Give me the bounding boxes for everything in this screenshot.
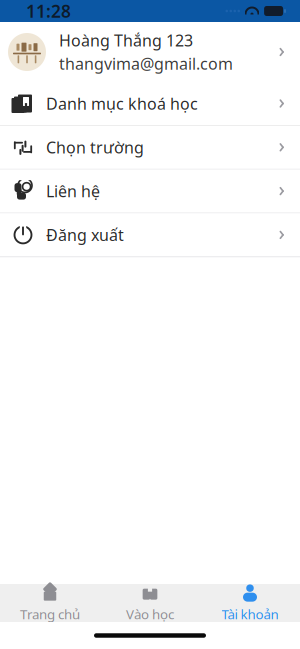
button[interactable]: Chọn trường bbox=[0, 126, 300, 169]
staticText: 11:28 bbox=[26, 0, 71, 22]
button[interactable]: Danh mục khoá học bbox=[0, 82, 300, 125]
button[interactable]: Đăng xuất bbox=[0, 213, 300, 256]
button[interactable]: Trang chủ bbox=[0, 584, 100, 622]
button[interactable]: Vào học bbox=[100, 584, 200, 622]
staticText: Vào học bbox=[126, 605, 174, 623]
staticText: Tài khoản bbox=[221, 605, 278, 623]
button[interactable]: Hoàng Thắng 123 bbox=[0, 22, 300, 82]
staticText: Trang chủ bbox=[20, 605, 80, 623]
staticText: Hoàng Thắng 123 bbox=[59, 30, 193, 51]
button[interactable]: Liên hệ bbox=[0, 170, 300, 213]
staticText: Danh mục khoá học bbox=[46, 93, 198, 114]
staticText: thangvima@gmail.com bbox=[59, 53, 233, 74]
staticText: Liên hệ bbox=[46, 180, 100, 202]
button[interactable]: Tài khoản bbox=[200, 584, 300, 622]
staticText: Đăng xuất bbox=[46, 224, 124, 245]
staticText: Chọn trường bbox=[46, 137, 144, 158]
